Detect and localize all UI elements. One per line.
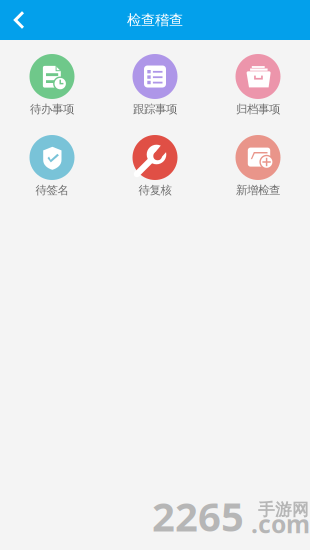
button[interactable]: 待办事项 [0,54,103,135]
button[interactable]: 待签名 [0,135,103,216]
staticText: 待签名 [35,183,68,197]
button[interactable]: 新增检查 [206,135,309,216]
staticText: 检查稽查 [127,11,183,29]
button[interactable]: 跟踪事项 [103,54,206,135]
staticText: .com [251,507,310,540]
button[interactable]: 待复核 [103,135,206,216]
button[interactable]: 返回 [0,0,40,40]
staticText: 2265 [152,489,244,543]
button[interactable]: 归档事项 [206,54,309,135]
staticText: 待办事项 [30,102,74,116]
staticText: 新增检查 [236,183,280,197]
staticText: 跟踪事项 [133,102,177,116]
staticText: 待复核 [138,183,171,197]
staticText: 归档事项 [236,102,280,116]
staticText: 手游网 [258,499,309,520]
